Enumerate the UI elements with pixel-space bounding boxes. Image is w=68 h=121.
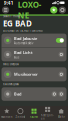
button[interactable]: Open Bad Licht (58, 52, 64, 57)
button[interactable]: Kategorien (41, 106, 54, 121)
staticText: LOXONE (18, 0, 42, 21)
staticText: SMART HOME (3, 14, 20, 18)
staticText: Zentral (15, 115, 25, 119)
button[interactable]: Favoriten (0, 106, 14, 121)
button[interactable]: Bad Licht (1, 48, 66, 61)
staticText: 9:41 (3, 0, 13, 6)
staticText: Aus (14, 56, 19, 59)
button[interactable]: Mehr (54, 106, 68, 121)
staticText: Bad Licht (14, 50, 33, 55)
staticText: Räume (29, 115, 38, 119)
staticText: AUTOMATIK (SCHATTIERUNG) (3, 29, 43, 32)
staticText: Mehr (58, 115, 65, 119)
button[interactable]: Bad (1, 87, 66, 101)
button[interactable]: Settings (59, 6, 66, 14)
button[interactable]: Musikserver (1, 67, 66, 81)
staticText: Kategorien (41, 113, 54, 121)
staticText: EG BAD (3, 18, 32, 29)
button[interactable]: Favourites (50, 6, 57, 14)
button[interactable]: Räume (27, 106, 41, 121)
staticText: RAUMKLIMA (3, 82, 19, 86)
staticText: Musikserver (14, 72, 38, 77)
button[interactable]: Menu (2, 6, 9, 14)
button[interactable]: Open Musikserver (58, 71, 64, 77)
button[interactable]: Bad Jalousie (1, 34, 66, 47)
button[interactable]: Zentral (14, 106, 27, 121)
staticText: Favoriten (1, 115, 13, 119)
staticText: MULTIMEDIA (3, 62, 19, 66)
button[interactable]: Increase (58, 91, 64, 97)
staticText: Bad Jalousie (14, 36, 37, 41)
staticText: Automatik aktiv (14, 41, 33, 45)
staticText: Bad (14, 91, 22, 97)
button[interactable]: Decrease (51, 91, 57, 97)
